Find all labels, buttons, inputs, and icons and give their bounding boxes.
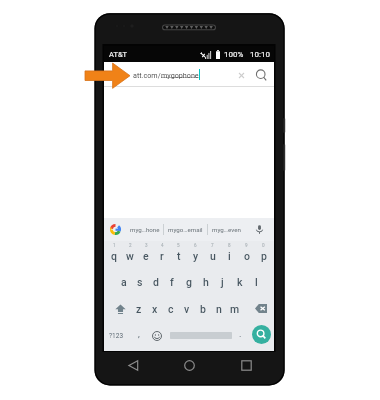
button[interactable]: 8 bbox=[221, 241, 238, 268]
button[interactable]: b bbox=[195, 295, 211, 322]
staticText: s bbox=[137, 276, 143, 288]
button[interactable]: 6 bbox=[187, 241, 204, 268]
button[interactable]: j bbox=[214, 268, 231, 295]
button[interactable]: g bbox=[180, 268, 197, 295]
button[interactable]: Search bbox=[247, 322, 272, 349]
staticText: ?123 bbox=[109, 332, 124, 340]
staticText: t bbox=[177, 250, 181, 262]
staticText: mygo…email bbox=[168, 226, 203, 233]
staticText: e bbox=[143, 250, 149, 262]
staticText: x bbox=[152, 303, 158, 315]
button[interactable]: myg…hone bbox=[127, 218, 163, 241]
button[interactable]: l bbox=[248, 268, 265, 295]
staticText: 2 bbox=[129, 243, 132, 248]
button[interactable]: Search bbox=[252, 66, 270, 84]
button[interactable]: a bbox=[116, 268, 132, 295]
staticText: n bbox=[216, 303, 222, 315]
button[interactable]: Backspace bbox=[243, 295, 272, 322]
button[interactable]: c bbox=[163, 295, 179, 322]
staticText: 4 bbox=[161, 243, 164, 248]
staticText: 6 bbox=[194, 243, 197, 248]
staticText: y bbox=[193, 250, 199, 262]
staticText: u bbox=[210, 250, 216, 262]
staticText: v bbox=[184, 303, 190, 315]
staticText: a bbox=[121, 276, 127, 288]
button[interactable]: Recents bbox=[235, 354, 257, 376]
button[interactable]: 1 bbox=[106, 241, 122, 268]
staticText: myg…hone bbox=[130, 226, 160, 233]
staticText: b bbox=[200, 303, 206, 315]
staticText: att.com/ bbox=[133, 71, 161, 79]
staticText: i bbox=[228, 250, 231, 262]
button[interactable]: x bbox=[147, 295, 163, 322]
button[interactable]: 0 bbox=[255, 241, 272, 268]
staticText: r bbox=[160, 250, 164, 262]
staticText: k bbox=[237, 276, 243, 288]
staticText: p bbox=[261, 250, 267, 262]
button[interactable]: . bbox=[234, 322, 247, 349]
staticText: 3 bbox=[145, 243, 148, 248]
button[interactable]: Clear bbox=[233, 67, 249, 83]
staticText: 8 bbox=[228, 243, 231, 248]
button[interactable]: n bbox=[211, 295, 227, 322]
button[interactable]: 4 bbox=[154, 241, 170, 268]
button[interactable]: k bbox=[231, 268, 248, 295]
staticText: 100% bbox=[224, 50, 244, 59]
staticText: q bbox=[111, 250, 117, 262]
staticText: f bbox=[170, 276, 174, 288]
staticText: 9 bbox=[245, 243, 248, 248]
button[interactable]: d bbox=[148, 268, 164, 295]
staticText: w bbox=[126, 250, 134, 262]
staticText: 0 bbox=[262, 243, 265, 248]
button[interactable]: Space bbox=[168, 322, 234, 349]
staticText: . bbox=[239, 329, 242, 340]
staticText: j bbox=[221, 276, 224, 288]
staticText: 5 bbox=[177, 243, 180, 248]
button[interactable]: Home bbox=[178, 354, 200, 376]
button[interactable]: m bbox=[227, 295, 243, 322]
button[interactable]: att.com/ bbox=[104, 62, 274, 87]
staticText: , bbox=[138, 329, 140, 340]
button[interactable]: f bbox=[164, 268, 180, 295]
staticText: o bbox=[244, 250, 250, 262]
staticText: z bbox=[136, 303, 142, 315]
button[interactable]: Voice input bbox=[245, 218, 274, 241]
button[interactable]: s bbox=[132, 268, 148, 295]
staticText: 10:10 bbox=[250, 50, 270, 59]
button[interactable]: h bbox=[197, 268, 214, 295]
staticText: 7 bbox=[211, 243, 214, 248]
button[interactable]: z bbox=[131, 295, 147, 322]
button[interactable]: myg…even bbox=[208, 218, 245, 241]
button[interactable]: ?123 bbox=[106, 322, 131, 349]
button[interactable]: Back bbox=[122, 354, 144, 376]
button[interactable]: 7 bbox=[204, 241, 221, 268]
button[interactable]: 3 bbox=[138, 241, 154, 268]
staticText: h bbox=[203, 276, 209, 288]
staticText: g bbox=[186, 276, 192, 288]
staticText: AT&T bbox=[109, 50, 128, 59]
staticText: c bbox=[168, 303, 174, 315]
staticText: 1 bbox=[113, 243, 116, 248]
button[interactable]: 2 bbox=[122, 241, 138, 268]
staticText: mygophone bbox=[161, 71, 199, 79]
button[interactable]: 5 bbox=[170, 241, 187, 268]
button[interactable]: v bbox=[179, 295, 195, 322]
staticText: m bbox=[230, 303, 240, 315]
staticText: l bbox=[255, 276, 258, 288]
button[interactable]: mygo…email bbox=[164, 218, 207, 241]
button[interactable]: Shift bbox=[106, 295, 131, 322]
button[interactable]: 9 bbox=[238, 241, 255, 268]
button[interactable]: , bbox=[131, 322, 146, 349]
staticText: d bbox=[153, 276, 159, 288]
button[interactable]: Emoji bbox=[146, 322, 168, 349]
staticText: myg…even bbox=[212, 226, 241, 233]
